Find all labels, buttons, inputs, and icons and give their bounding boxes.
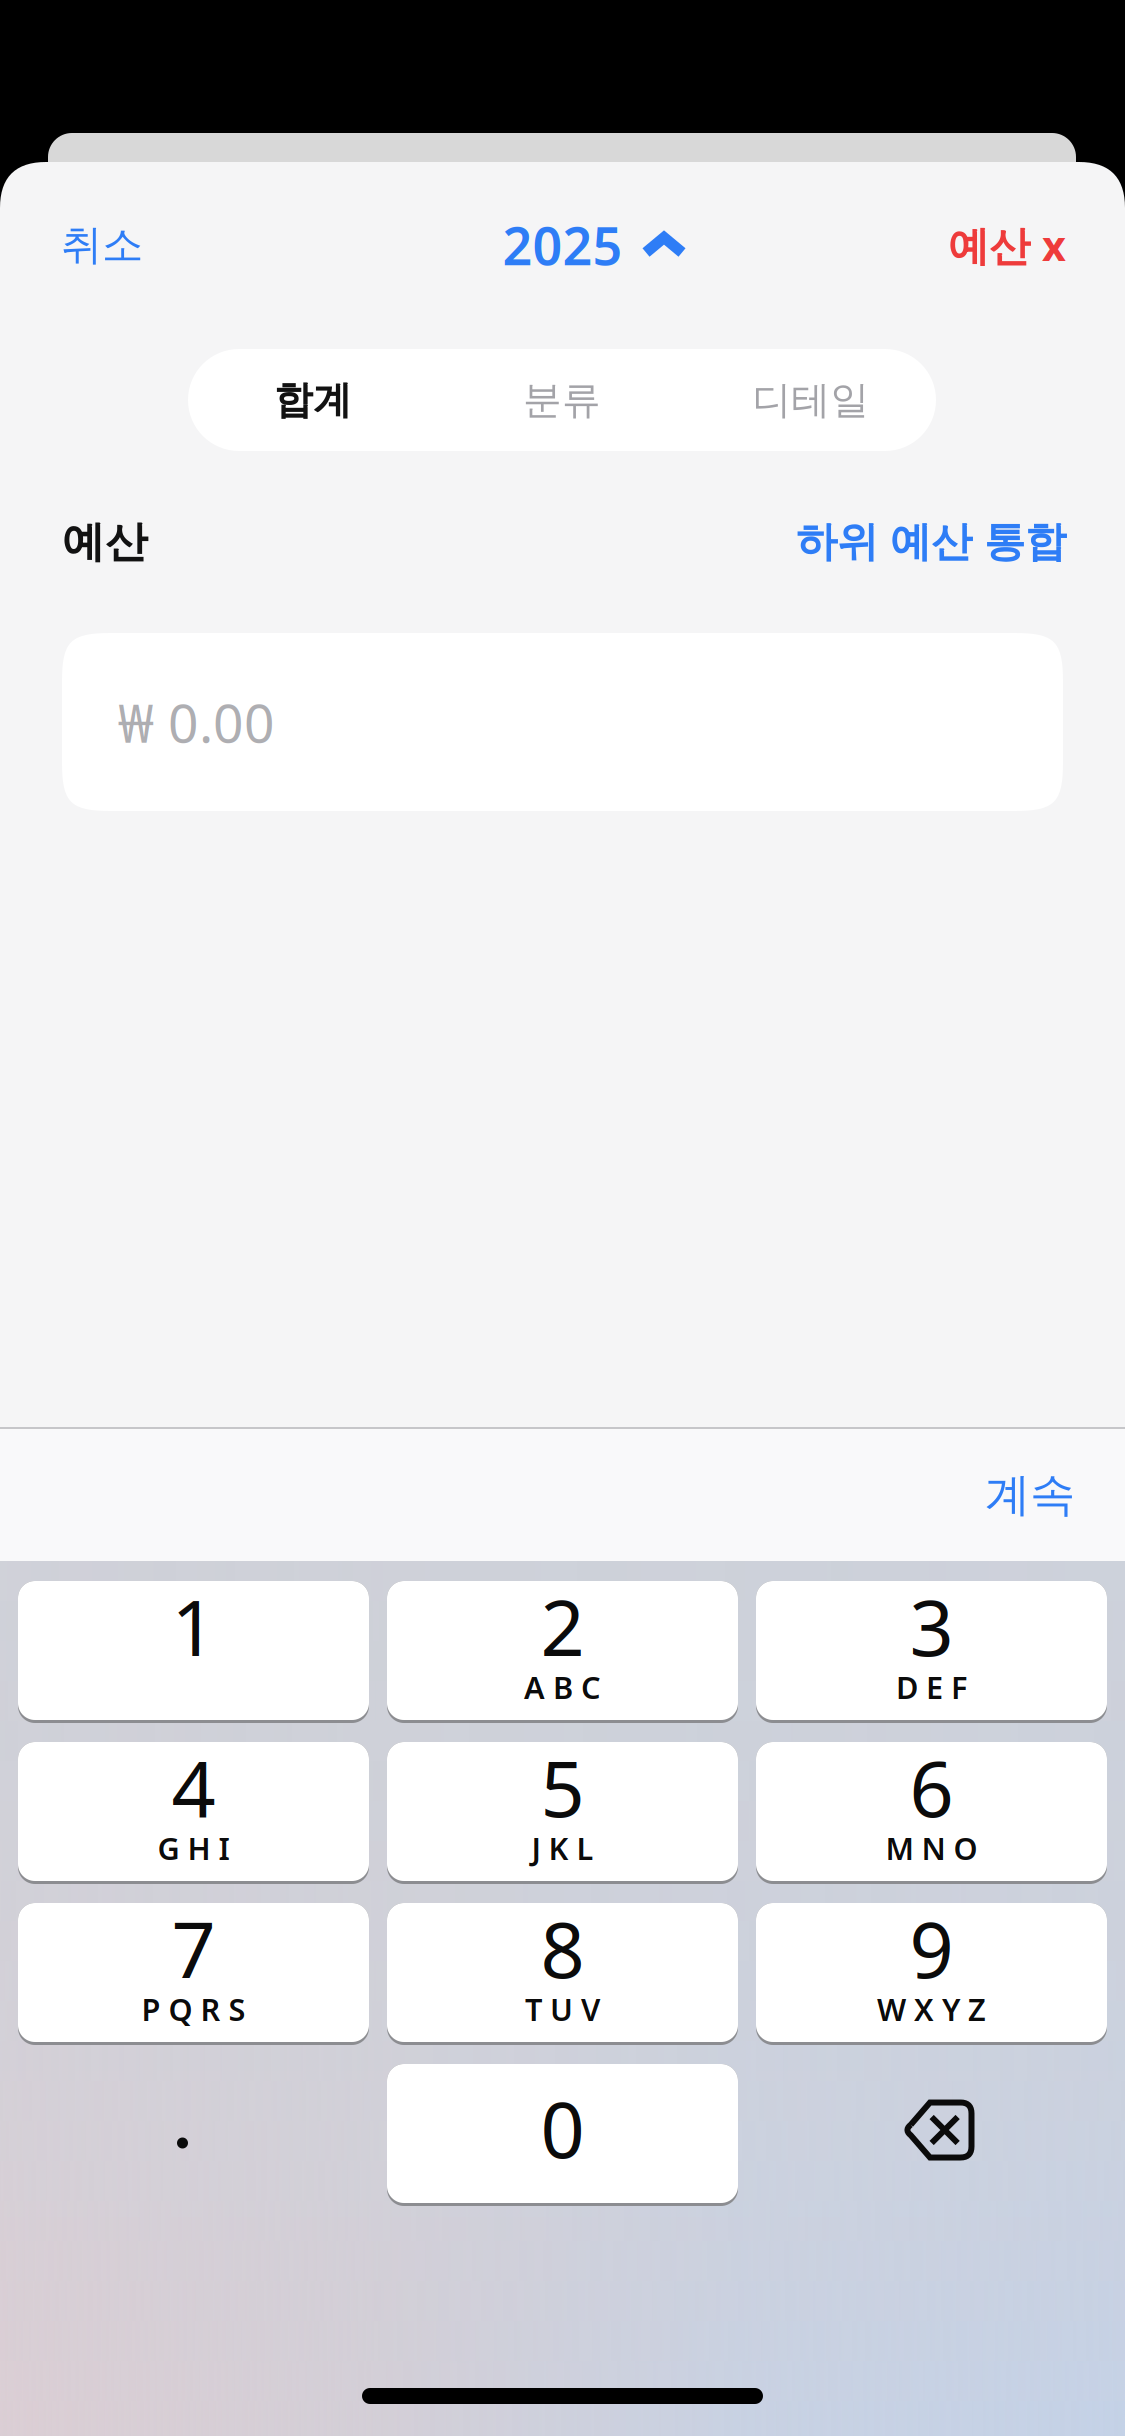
staticText: M N O	[885, 1828, 977, 1868]
button[interactable]: 7	[18, 1903, 369, 2045]
staticText: T U V	[525, 1989, 600, 2029]
staticText: 9	[909, 1897, 953, 1999]
button[interactable]: 디테일	[686, 349, 935, 451]
staticText: 1	[171, 1575, 215, 1677]
staticText: ₩ 0.00	[118, 687, 275, 757]
button[interactable]: 8	[387, 1903, 738, 2045]
staticText: 3	[909, 1575, 953, 1677]
button[interactable]: 9	[756, 1903, 1107, 2045]
staticText: P Q R S	[141, 1989, 245, 2029]
staticText: 분류	[523, 376, 601, 424]
staticText: 7	[171, 1897, 215, 1999]
staticText: W X Y Z	[877, 1989, 986, 2029]
button[interactable]: 합계	[188, 349, 437, 451]
button[interactable]: 4	[18, 1742, 369, 1884]
staticText: 2	[540, 1575, 584, 1677]
button[interactable]: Decimal point	[18, 2065, 369, 2204]
staticText: 8	[540, 1897, 584, 1999]
staticText: D E F	[896, 1667, 967, 1707]
staticText: 합계	[274, 376, 352, 424]
button[interactable]: Delete	[756, 2065, 1107, 2204]
staticText: 예산	[62, 516, 148, 568]
button[interactable]: 0	[387, 2064, 738, 2206]
button[interactable]: 1	[18, 1581, 369, 1723]
staticText: 취소	[61, 220, 143, 270]
staticText: 예산 x	[948, 218, 1066, 272]
staticText: 2025	[502, 210, 622, 280]
button[interactable]: 계속	[855, 1429, 1075, 1561]
staticText: J K L	[531, 1828, 593, 1868]
button[interactable]: 3	[756, 1581, 1107, 1723]
staticText: 4	[171, 1736, 215, 1838]
staticText: 하위 예산 통합	[796, 517, 1066, 567]
staticText: A B C	[524, 1667, 601, 1707]
button[interactable]: 2025	[435, 187, 755, 303]
button[interactable]: 분류	[437, 349, 686, 451]
staticText: 6	[909, 1736, 953, 1838]
staticText: 계속	[985, 1467, 1075, 1523]
button[interactable]: 2	[387, 1581, 738, 1723]
button[interactable]: 하위 예산 통합	[796, 517, 1066, 567]
button[interactable]: 5	[387, 1742, 738, 1884]
button[interactable]: 취소	[61, 187, 271, 303]
staticText: G H I	[157, 1828, 229, 1868]
staticText: 0	[540, 2077, 584, 2179]
staticText: 디테일	[752, 376, 869, 424]
button[interactable]: 예산 x	[856, 187, 1066, 303]
staticText: 5	[540, 1736, 584, 1838]
button[interactable]: 6	[756, 1742, 1107, 1884]
